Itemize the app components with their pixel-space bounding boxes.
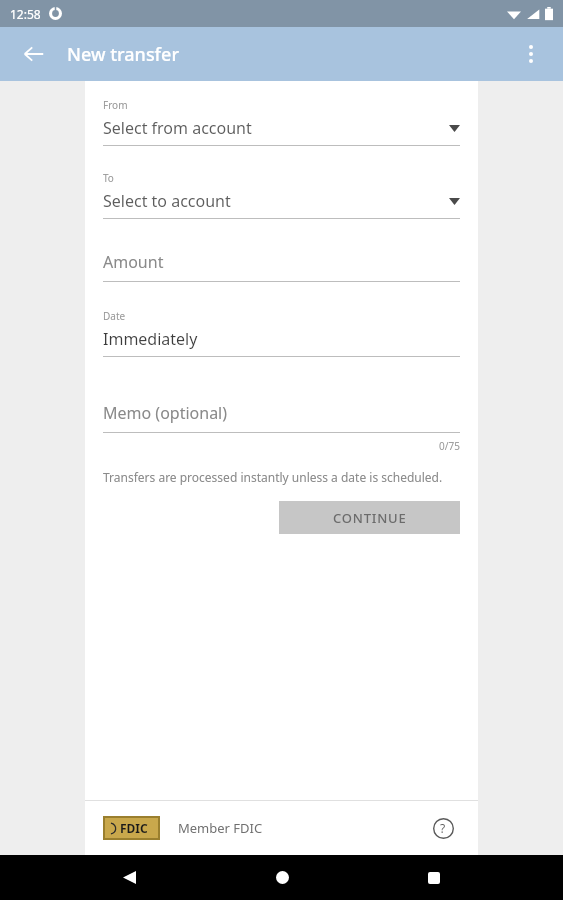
button[interactable]: Date [103,309,460,357]
staticText: Select to account [103,190,231,212]
button[interactable]: More options [509,32,553,76]
staticText: From [103,98,128,112]
staticText: To [103,171,114,185]
staticText: Memo (optional) [103,402,228,424]
staticText: Date [103,309,126,323]
button[interactable]: Memo (optional) [103,400,460,433]
staticText: CONTINUE [333,509,407,527]
button[interactable]: Home [258,855,306,900]
button[interactable]: Recent apps [410,855,458,900]
staticText: Immediately [103,328,198,350]
button[interactable]: Amount [103,249,460,282]
staticText: Select from account [103,117,252,139]
staticText: New transfer [67,42,179,67]
staticText: Transfers are processed instantly unless… [103,469,443,485]
button[interactable]: Back [105,855,153,900]
staticText: 0/75 [439,439,460,453]
staticText: FDIC [120,820,148,836]
staticText: ? [440,820,446,836]
button[interactable]: To [103,171,460,219]
staticText: Member FDIC [178,819,263,837]
button[interactable]: Help [426,811,460,845]
button[interactable]: CONTINUE [279,501,460,534]
button[interactable]: Back [12,32,56,76]
staticText: Amount [103,251,164,273]
button[interactable]: From [103,98,460,146]
staticText: 12:58 [10,6,41,22]
